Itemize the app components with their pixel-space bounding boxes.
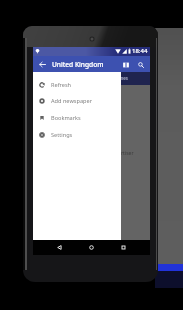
button[interactable]: Refresh <box>33 76 121 93</box>
button[interactable]: Home <box>85 240 97 255</box>
staticText: mes <box>119 75 128 81</box>
staticText: United Kingdom <box>52 60 104 69</box>
button[interactable]: Back <box>53 240 65 255</box>
button[interactable]: Settings <box>33 126 121 143</box>
button[interactable]: Newspapers <box>120 56 132 73</box>
button[interactable]: Add newspaper <box>33 92 121 109</box>
staticText: 18:44 <box>132 47 148 55</box>
staticText: Settings <box>51 131 73 139</box>
button[interactable]: Bookmarks <box>33 109 121 126</box>
staticText: Bookmarks <box>51 114 81 122</box>
staticText: Refresh <box>51 81 72 89</box>
button[interactable]: Recent apps <box>117 240 129 255</box>
button[interactable]: Navigate up <box>34 56 50 73</box>
button[interactable]: Search <box>135 56 147 73</box>
staticText: Add newspaper <box>51 97 92 105</box>
staticText: rtiser <box>121 150 134 157</box>
